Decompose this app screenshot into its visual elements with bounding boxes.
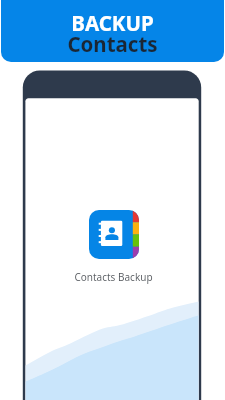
- staticText: Contacts Backup: [74, 270, 153, 284]
- button[interactable]: Contacts Backup app icon: [89, 210, 139, 259]
- staticText: BACKUP: [1, 9, 224, 37]
- button[interactable]: BACKUP: [1, 0, 224, 62]
- staticText: Contacts: [1, 30, 224, 58]
